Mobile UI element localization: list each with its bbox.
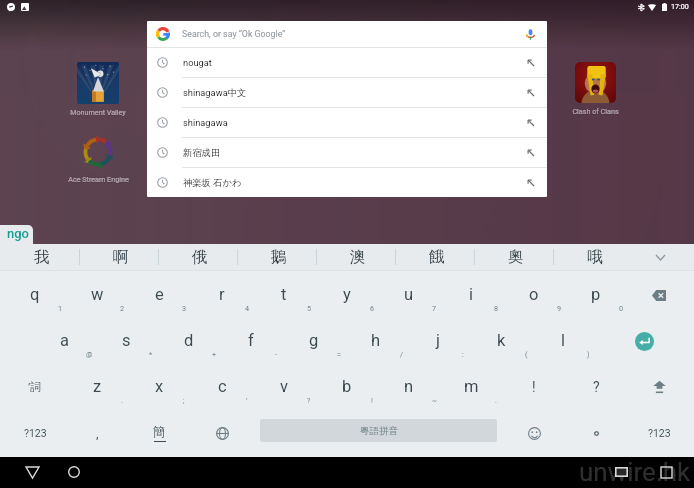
button[interactable]: ?123 <box>628 410 690 456</box>
button[interactable]: q <box>4 272 66 318</box>
button[interactable]: y <box>316 272 378 318</box>
staticText: 俄 <box>192 247 208 267</box>
button[interactable]: e <box>128 272 190 318</box>
button[interactable] <box>565 410 627 456</box>
staticText: . <box>495 396 497 404</box>
staticText: 新宿成田 <box>183 147 527 159</box>
button[interactable]: Ace Stream Engine <box>43 133 153 183</box>
staticText: z <box>93 377 102 396</box>
button[interactable]: ? <box>565 364 627 410</box>
staticText: 澳 <box>350 247 366 267</box>
staticText: l <box>561 331 566 350</box>
button[interactable]: 鵝 <box>239 244 318 270</box>
staticText: 2 <box>120 304 125 312</box>
button[interactable]: Monument Valley <box>43 62 153 116</box>
staticText: shinagawa中文 <box>183 87 527 99</box>
staticText: Ace Stream Engine <box>68 176 129 184</box>
button[interactable]: ! <box>503 364 565 410</box>
button[interactable]: t <box>253 272 315 318</box>
button[interactable]: Home <box>58 458 90 486</box>
button[interactable]: Enter <box>608 318 680 364</box>
staticText: m <box>464 377 479 396</box>
button[interactable]: a <box>33 318 95 364</box>
staticText: Clash of Clans <box>572 108 619 116</box>
button[interactable]: d <box>158 318 220 364</box>
staticText: unwire.hk <box>579 457 691 487</box>
staticText: ngo <box>7 226 29 241</box>
staticText: p <box>591 285 601 304</box>
button[interactable]: Clash of Clans <box>540 62 650 115</box>
button[interactable]: f <box>220 318 282 364</box>
staticText: ; <box>183 396 185 404</box>
staticText: 4 <box>245 304 250 312</box>
button[interactable]: 新宿成田 <box>147 138 547 167</box>
button[interactable]: l <box>532 318 594 364</box>
button[interactable]: o <box>503 272 565 318</box>
button[interactable]: 神楽坂 石かわ <box>147 168 547 197</box>
button[interactable]: c <box>191 364 253 410</box>
button[interactable]: 奧 <box>476 244 555 270</box>
staticText: Clash of Clans <box>572 107 619 115</box>
button[interactable]: z <box>66 364 128 410</box>
button[interactable]: Keyboard <box>608 459 634 485</box>
button[interactable]: 澳 <box>318 244 397 270</box>
staticText: q <box>30 285 40 304</box>
staticText: o <box>529 285 539 304</box>
button[interactable]: Back <box>16 458 48 486</box>
staticText: 粵語拼音 <box>360 425 398 437</box>
button[interactable]: , <box>66 410 128 456</box>
staticText: 我 <box>34 247 50 267</box>
other: Message <box>3 0 19 15</box>
button[interactable]: u <box>378 272 440 318</box>
button[interactable]: g <box>283 318 345 364</box>
staticText: 簡 <box>153 424 166 440</box>
staticText: = <box>337 350 341 358</box>
button[interactable]: 哦 <box>555 244 634 270</box>
staticText: : <box>462 350 464 358</box>
button[interactable]: 啊 <box>81 244 160 270</box>
button[interactable]: Emoji <box>503 410 565 456</box>
staticText: r <box>219 285 225 304</box>
button[interactable]: r <box>191 272 253 318</box>
button[interactable]: ’詞 <box>4 364 66 410</box>
button[interactable]: i <box>440 272 502 318</box>
button[interactable]: n <box>378 364 440 410</box>
button[interactable]: 餓 <box>397 244 476 270</box>
button[interactable]: 我 <box>2 244 81 270</box>
button[interactable]: Backspace <box>628 272 690 318</box>
staticText: 奧 <box>508 247 524 267</box>
button[interactable]: Search, or say “Ok Google” <box>147 21 547 47</box>
button[interactable]: shinagawa中文 <box>147 78 547 107</box>
staticText: ! <box>532 379 536 395</box>
button[interactable]: Shift <box>628 364 690 410</box>
button[interactable]: x <box>128 364 190 410</box>
button[interactable]: v <box>253 364 315 410</box>
staticText: * <box>149 350 153 358</box>
staticText: ) <box>587 350 590 358</box>
button[interactable]: shinagawa <box>147 108 547 137</box>
button[interactable]: 俄 <box>160 244 239 270</box>
staticText: d <box>184 331 194 350</box>
button[interactable]: ?123 <box>4 410 66 456</box>
staticText: 17:00 <box>671 2 689 10</box>
button[interactable]: h <box>345 318 407 364</box>
staticText: 9 <box>557 304 562 312</box>
button[interactable]: p <box>565 272 627 318</box>
button[interactable]: ngo <box>0 225 33 244</box>
button[interactable]: More candidates <box>629 244 691 270</box>
button[interactable]: Recents <box>653 459 679 485</box>
button[interactable]: b <box>316 364 378 410</box>
staticText: 鵝 <box>271 247 287 267</box>
button[interactable]: m <box>440 364 502 410</box>
staticText: 餓 <box>429 247 445 267</box>
button[interactable]: 簡 <box>128 410 190 456</box>
button[interactable]: j <box>407 318 469 364</box>
button[interactable]: Change keyboard <box>191 410 253 456</box>
staticText: ? <box>593 379 600 395</box>
button[interactable]: 粵語拼音 <box>260 419 497 442</box>
button[interactable]: nougat <box>147 48 547 77</box>
staticText: 8 <box>494 304 499 312</box>
button[interactable]: s <box>95 318 157 364</box>
button[interactable]: k <box>470 318 532 364</box>
button[interactable]: w <box>66 272 128 318</box>
